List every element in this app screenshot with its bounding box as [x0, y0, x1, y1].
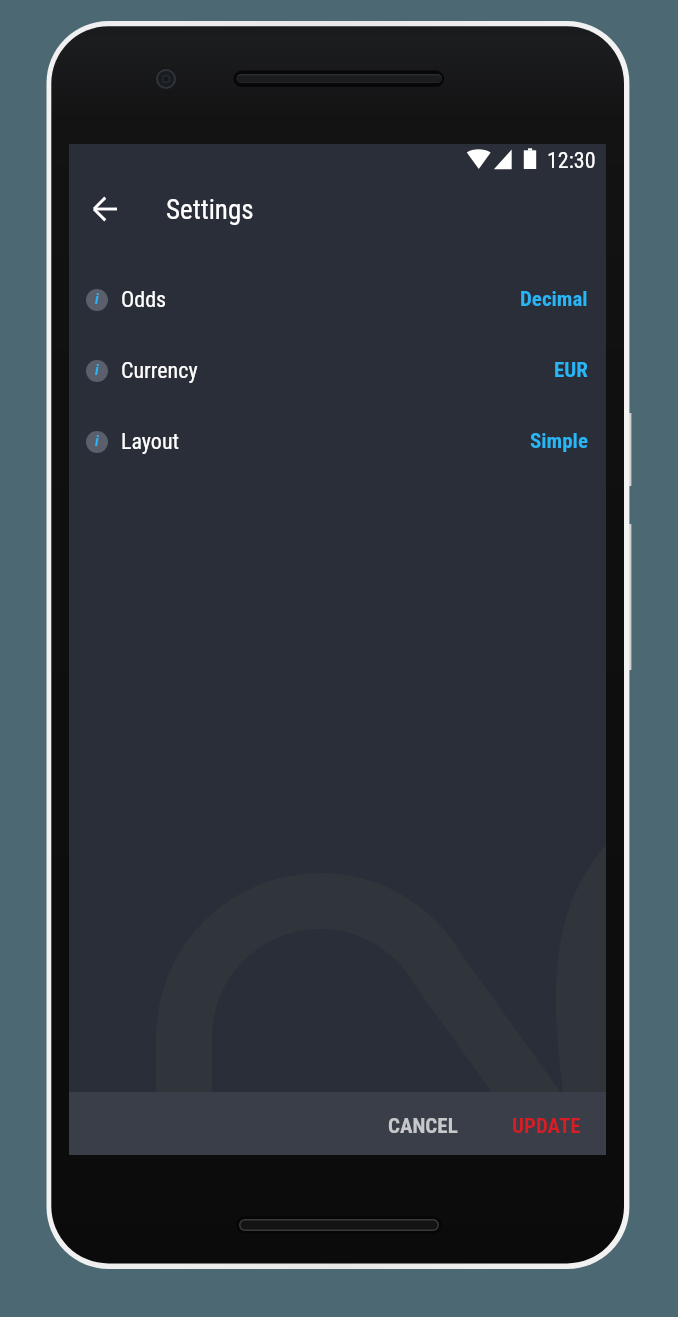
button[interactable]: CANCEL	[374, 1098, 472, 1149]
button[interactable]: Back	[80, 184, 129, 233]
button[interactable]: i	[69, 264, 606, 335]
staticText: Odds	[121, 287, 167, 313]
staticText: Decimal	[520, 287, 588, 312]
staticText: UPDATE	[512, 1114, 581, 1139]
staticText: Currency	[121, 358, 198, 384]
staticText: 12:30	[547, 148, 596, 174]
staticText: Settings	[166, 194, 254, 226]
staticText: i	[95, 432, 99, 450]
button[interactable]: i	[69, 406, 606, 477]
staticText: CANCEL	[388, 1114, 458, 1139]
staticText: i	[95, 290, 99, 308]
staticText: Layout	[121, 429, 180, 455]
staticText: i	[95, 361, 99, 379]
button[interactable]: i	[69, 335, 606, 406]
button[interactable]: UPDATE	[498, 1098, 595, 1149]
staticText: Simple	[530, 429, 588, 454]
staticText: EUR	[554, 358, 588, 383]
